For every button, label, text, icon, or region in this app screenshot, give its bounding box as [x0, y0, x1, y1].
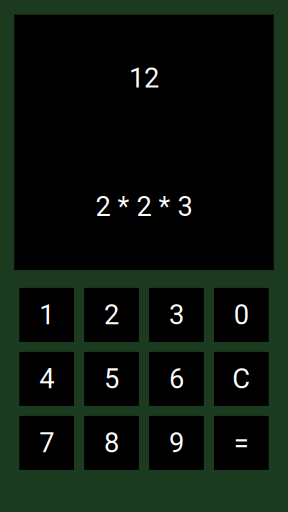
staticText: C — [232, 363, 250, 395]
button[interactable]: 8 — [84, 416, 139, 470]
staticText: 0 — [234, 299, 249, 331]
staticText: 2 * 2 * 3 — [95, 191, 192, 223]
button[interactable]: 3 — [149, 288, 204, 342]
staticText: = — [234, 427, 249, 459]
button[interactable]: 0 — [214, 288, 269, 342]
button[interactable]: 9 — [149, 416, 204, 470]
button[interactable]: 6 — [149, 352, 204, 406]
staticText: 5 — [104, 363, 119, 395]
staticText: 3 — [169, 299, 184, 331]
staticText: 9 — [169, 427, 184, 459]
staticText: 6 — [169, 363, 184, 395]
staticText: 8 — [104, 427, 119, 459]
button[interactable]: 4 — [19, 352, 74, 406]
staticText: 1 — [39, 299, 54, 331]
button[interactable]: 5 — [84, 352, 139, 406]
staticText: 12 — [129, 62, 159, 94]
button[interactable]: = — [214, 416, 269, 470]
staticText: 4 — [39, 363, 54, 395]
button[interactable]: C — [214, 352, 269, 406]
staticText: 7 — [39, 427, 54, 459]
staticText: 2 — [104, 299, 119, 331]
button[interactable]: 7 — [19, 416, 74, 470]
button[interactable]: 2 — [84, 288, 139, 342]
button[interactable]: 1 — [19, 288, 74, 342]
